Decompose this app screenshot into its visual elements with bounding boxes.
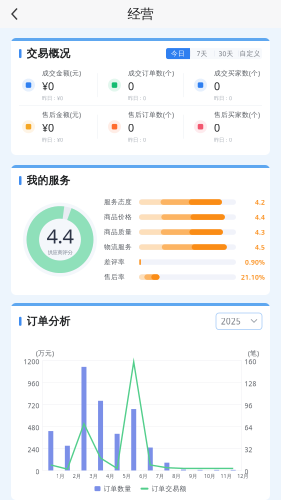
staticText: 128	[244, 379, 256, 388]
staticText: ¥0	[42, 120, 54, 135]
staticText: ¥0	[42, 79, 54, 93]
button[interactable]: 2025	[216, 313, 262, 330]
staticText: 7月	[156, 472, 164, 480]
staticText: 4.2	[255, 198, 265, 207]
staticText: 0	[128, 120, 134, 135]
staticText: 11月	[221, 472, 232, 480]
staticText: 供应商评分	[47, 249, 72, 256]
staticText: 商品价格	[104, 213, 132, 221]
button[interactable]: 30天	[214, 48, 238, 59]
staticText: 4.4	[255, 213, 265, 222]
staticText: 订单分析	[26, 315, 70, 328]
staticText: 0	[214, 120, 220, 135]
staticText: 成交买家数(个)	[214, 69, 260, 77]
staticText: 32	[244, 445, 252, 454]
staticText: 12月	[237, 472, 248, 480]
staticText: (笔)	[248, 349, 259, 357]
staticText: 10月	[204, 472, 215, 480]
staticText: 96	[244, 401, 252, 410]
staticText: 3月	[89, 472, 97, 480]
staticText: 240	[27, 445, 39, 454]
button[interactable]: 今日	[166, 48, 190, 59]
staticText: 0	[244, 467, 248, 476]
staticText: 昨日：¥0	[42, 95, 63, 102]
staticText: 订单交易额	[151, 485, 186, 493]
staticText: 服务态度	[104, 198, 132, 206]
staticText: 5月	[123, 472, 131, 480]
staticText: 1月	[56, 472, 64, 480]
staticText: 7天	[196, 49, 207, 58]
staticText: 0	[35, 467, 39, 476]
staticText: 昨日：0	[214, 95, 232, 102]
staticText: 2025	[221, 316, 241, 327]
staticText: 售后率	[104, 273, 125, 281]
staticText: 自定义	[239, 49, 260, 58]
button[interactable]: Back	[0, 0, 33, 27]
staticText: 30天	[218, 49, 233, 58]
staticText: 4.4	[46, 222, 73, 249]
staticText: 0	[214, 79, 220, 93]
staticText: 0.90%	[245, 258, 265, 267]
staticText: 昨日：0	[214, 136, 232, 143]
staticText: 售后买家数(个)	[214, 110, 260, 119]
staticText: 售后金额(元)	[42, 110, 81, 119]
staticText: 4.5	[255, 243, 265, 252]
staticText: 64	[244, 423, 252, 432]
staticText: 21.10%	[241, 273, 265, 282]
staticText: 我的服务	[26, 174, 70, 187]
staticText: 4.3	[255, 228, 265, 237]
staticText: 8月	[172, 472, 180, 480]
staticText: 1200	[23, 357, 39, 366]
staticText: 9月	[189, 472, 197, 480]
staticText: 物流服务	[104, 243, 132, 251]
staticText: 成交订单数(个)	[128, 69, 174, 77]
staticText: 昨日：¥0	[42, 136, 63, 143]
button[interactable]: 自定义	[238, 48, 262, 59]
staticText: 商品质量	[104, 228, 132, 236]
staticText: 今日	[171, 49, 185, 58]
staticText: 4月	[106, 472, 114, 480]
staticText: 0	[128, 79, 134, 93]
staticText: 6月	[139, 472, 147, 480]
staticText: 订单数量	[103, 485, 131, 493]
staticText: 售后订单数(个)	[128, 110, 174, 119]
staticText: 经营	[127, 6, 153, 22]
staticText: 480	[27, 423, 39, 432]
staticText: 交易概况	[26, 47, 70, 60]
button[interactable]: 7天	[190, 48, 214, 59]
staticText: 160	[244, 357, 256, 366]
staticText: 差评率	[104, 258, 125, 266]
staticText: 960	[27, 379, 39, 388]
staticText: 720	[27, 401, 39, 410]
staticText: 成交金额(元)	[42, 69, 81, 77]
staticText: (万元)	[36, 349, 54, 357]
staticText: 2月	[73, 472, 81, 480]
staticText: 昨日：0	[128, 95, 146, 102]
staticText: 昨日：0	[128, 136, 146, 143]
